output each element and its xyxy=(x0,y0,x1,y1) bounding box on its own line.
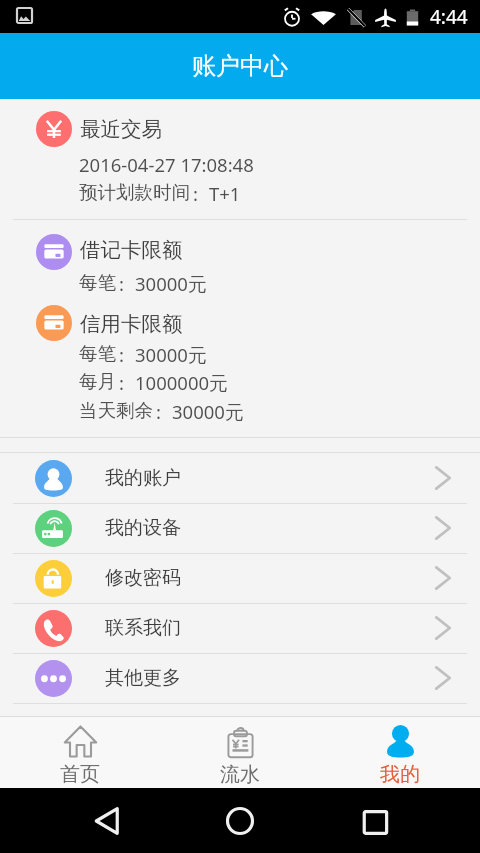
button[interactable]: 我的账户 xyxy=(0,453,480,503)
button[interactable]: 流水 xyxy=(160,717,320,788)
staticText: : xyxy=(119,271,124,296)
staticText: : xyxy=(193,181,198,206)
button[interactable]: 我的 xyxy=(320,717,480,788)
button[interactable]: 联系我们 xyxy=(0,603,480,653)
staticText: : xyxy=(119,370,124,395)
staticText: 4:44 xyxy=(430,4,468,30)
staticText: 30000元 xyxy=(135,271,207,296)
button[interactable]: Recent apps xyxy=(358,805,390,837)
staticText: 2016-04-27 17:08:48 xyxy=(79,152,254,177)
button[interactable]: 我的设备 xyxy=(0,503,480,553)
staticText: 联系我们 xyxy=(105,616,181,640)
staticText: 修改密码 xyxy=(105,566,181,590)
staticText: 每笔 xyxy=(79,271,116,294)
staticText: 我的 xyxy=(380,762,420,787)
button[interactable]: 其他更多 xyxy=(0,653,480,703)
staticText: 账户中心 xyxy=(192,51,288,81)
button[interactable]: Back xyxy=(91,805,123,837)
staticText: : xyxy=(156,399,161,424)
staticText: 30000元 xyxy=(172,399,244,424)
staticText: 其他更多 xyxy=(105,666,181,690)
staticText: 最近交易 xyxy=(80,116,162,142)
staticText: 当天剩余 xyxy=(79,399,153,422)
button[interactable]: Home xyxy=(224,805,256,837)
staticText: 首页 xyxy=(60,762,100,787)
staticText: 信用卡限额 xyxy=(80,311,183,337)
staticText: 1000000元 xyxy=(135,370,228,395)
button[interactable]: 首页 xyxy=(0,717,160,788)
staticText: 我的设备 xyxy=(105,516,181,540)
staticText: T+1 xyxy=(209,181,241,206)
staticText: 流水 xyxy=(220,762,260,787)
button[interactable]: 修改密码 xyxy=(0,553,480,603)
staticText: 我的账户 xyxy=(105,466,181,490)
staticText: 预计划款时间 xyxy=(79,181,190,204)
staticText: 30000元 xyxy=(135,342,207,367)
staticText: 每笔 xyxy=(79,342,116,365)
staticText: : xyxy=(119,342,124,367)
staticText: 借记卡限额 xyxy=(80,237,183,263)
staticText: 每月 xyxy=(79,370,116,393)
